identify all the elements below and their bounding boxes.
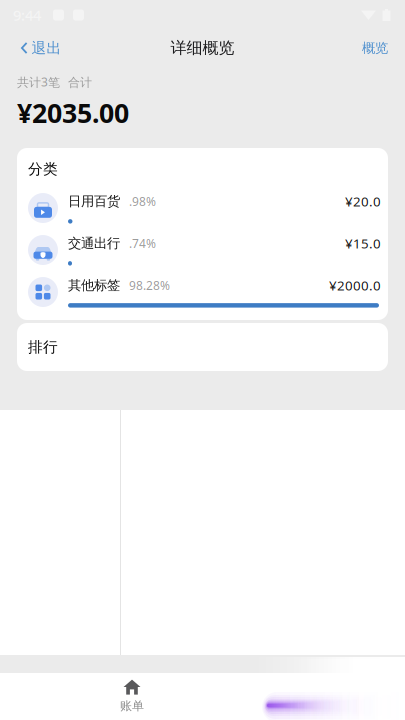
- button[interactable]: 排行: [17, 323, 388, 371]
- staticText: 排行: [28, 338, 58, 356]
- staticText: .98%: [129, 193, 156, 209]
- staticText: ¥2035.00: [17, 95, 129, 130]
- staticText: 详细概览: [170, 38, 234, 58]
- button[interactable]: 退出: [0, 31, 75, 65]
- button[interactable]: 其他标签: [28, 271, 381, 313]
- staticText: 分类: [28, 160, 58, 178]
- button[interactable]: 账单: [90, 673, 174, 720]
- staticText: ¥15.0: [345, 234, 381, 252]
- staticText: 98.28%: [129, 277, 170, 293]
- staticText: 其他标签: [68, 277, 120, 293]
- button[interactable]: 交通出行: [28, 229, 381, 271]
- staticText: ¥2000.0: [329, 276, 381, 294]
- staticText: 交通出行: [68, 235, 120, 251]
- staticText: 概览: [362, 40, 388, 56]
- staticText: 共计3笔 合计: [17, 74, 92, 90]
- staticText: 账单: [120, 699, 144, 713]
- button[interactable]: 日用百货: [28, 187, 381, 229]
- button[interactable]: 概览: [348, 31, 405, 65]
- staticText: 退出: [31, 39, 61, 57]
- staticText: 日用百货: [68, 193, 120, 209]
- staticText: .74%: [129, 235, 156, 251]
- staticText: ¥20.0: [345, 192, 381, 210]
